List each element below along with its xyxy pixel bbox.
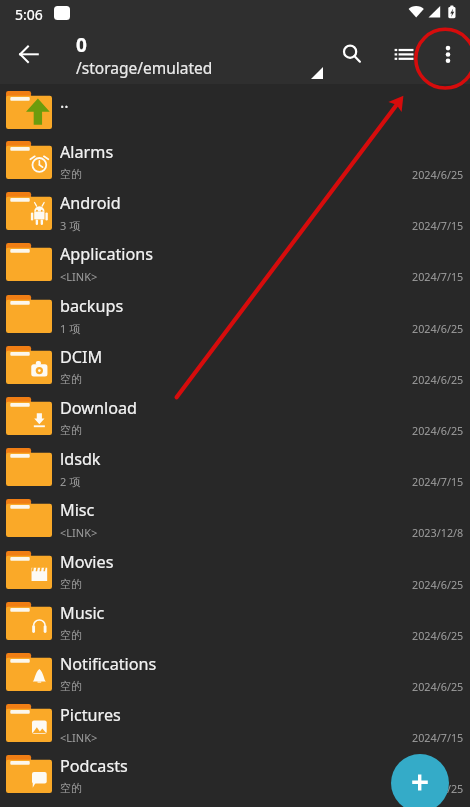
staticText: 5:06 (15, 5, 43, 24)
button[interactable]: .. (0, 84, 470, 133)
staticText: 2024/6/25 (412, 372, 464, 387)
staticText: 2024/7/15 (412, 218, 464, 233)
staticText: 0 (76, 32, 87, 58)
button[interactable]: Misc (0, 491, 470, 542)
staticText: <LINK> (60, 269, 98, 284)
staticText: 2024/6/25 (412, 679, 464, 694)
staticText: 2023/12/8 (412, 525, 464, 540)
staticText: Pictures (60, 704, 121, 726)
staticText: 2024/6/25 (412, 321, 464, 336)
button[interactable]: Notifications (0, 645, 470, 696)
button[interactable]: More options (426, 30, 470, 74)
button[interactable]: backups (0, 287, 470, 338)
staticText: 空的 (60, 167, 82, 181)
button[interactable]: ldsdk (0, 440, 470, 491)
staticText: 空的 (60, 628, 82, 642)
staticText: ldsdk (60, 448, 101, 470)
button[interactable]: DCIM (0, 338, 470, 389)
button[interactable]: Android (0, 184, 470, 235)
button[interactable]: Back (7, 32, 51, 76)
button[interactable]: Add (391, 754, 449, 807)
button[interactable]: Alarms (0, 133, 470, 184)
staticText: Download (60, 397, 138, 419)
staticText: Android (60, 192, 121, 214)
staticText: Misc (60, 499, 95, 521)
staticText: 2024/7/15 (412, 269, 464, 284)
staticText: 2024/6/25 (412, 781, 464, 796)
staticText: /storage/emulated (76, 57, 213, 78)
button[interactable]: Download (0, 389, 470, 440)
staticText: 2024/6/25 (412, 577, 464, 592)
staticText: DCIM (60, 346, 103, 368)
staticText: 2024/6/25 (412, 167, 464, 182)
button[interactable]: Search (329, 30, 373, 74)
staticText: Applications (60, 243, 154, 265)
staticText: 空的 (60, 577, 82, 591)
staticText: backups (60, 295, 124, 317)
staticText: Music (60, 602, 105, 624)
button[interactable]: View mode (382, 30, 426, 74)
staticText: 1 项 (60, 321, 81, 336)
staticText: 2024/7/15 (412, 474, 464, 489)
button[interactable]: Podcasts (0, 747, 470, 798)
staticText: 空的 (60, 372, 82, 386)
staticText: .. (60, 91, 69, 113)
button[interactable]: Movies (0, 543, 470, 594)
staticText: 2 项 (60, 474, 81, 489)
staticText: Notifications (60, 653, 157, 675)
staticText: Alarms (60, 141, 114, 163)
staticText: 2024/6/25 (412, 423, 464, 438)
button[interactable]: Music (0, 594, 470, 645)
button[interactable]: Applications (0, 235, 470, 286)
staticText: 空的 (60, 679, 82, 693)
staticText: Podcasts (60, 755, 128, 777)
staticText: 空的 (60, 423, 82, 437)
staticText: <LINK> (60, 730, 98, 745)
staticText: <LINK> (60, 525, 98, 540)
staticText: 3 项 (60, 218, 81, 233)
staticText: 2024/6/25 (412, 628, 464, 643)
staticText: Movies (60, 551, 114, 573)
staticText: 空的 (60, 781, 82, 795)
staticText: 2024/7/15 (412, 730, 464, 745)
button[interactable]: Pictures (0, 696, 470, 747)
